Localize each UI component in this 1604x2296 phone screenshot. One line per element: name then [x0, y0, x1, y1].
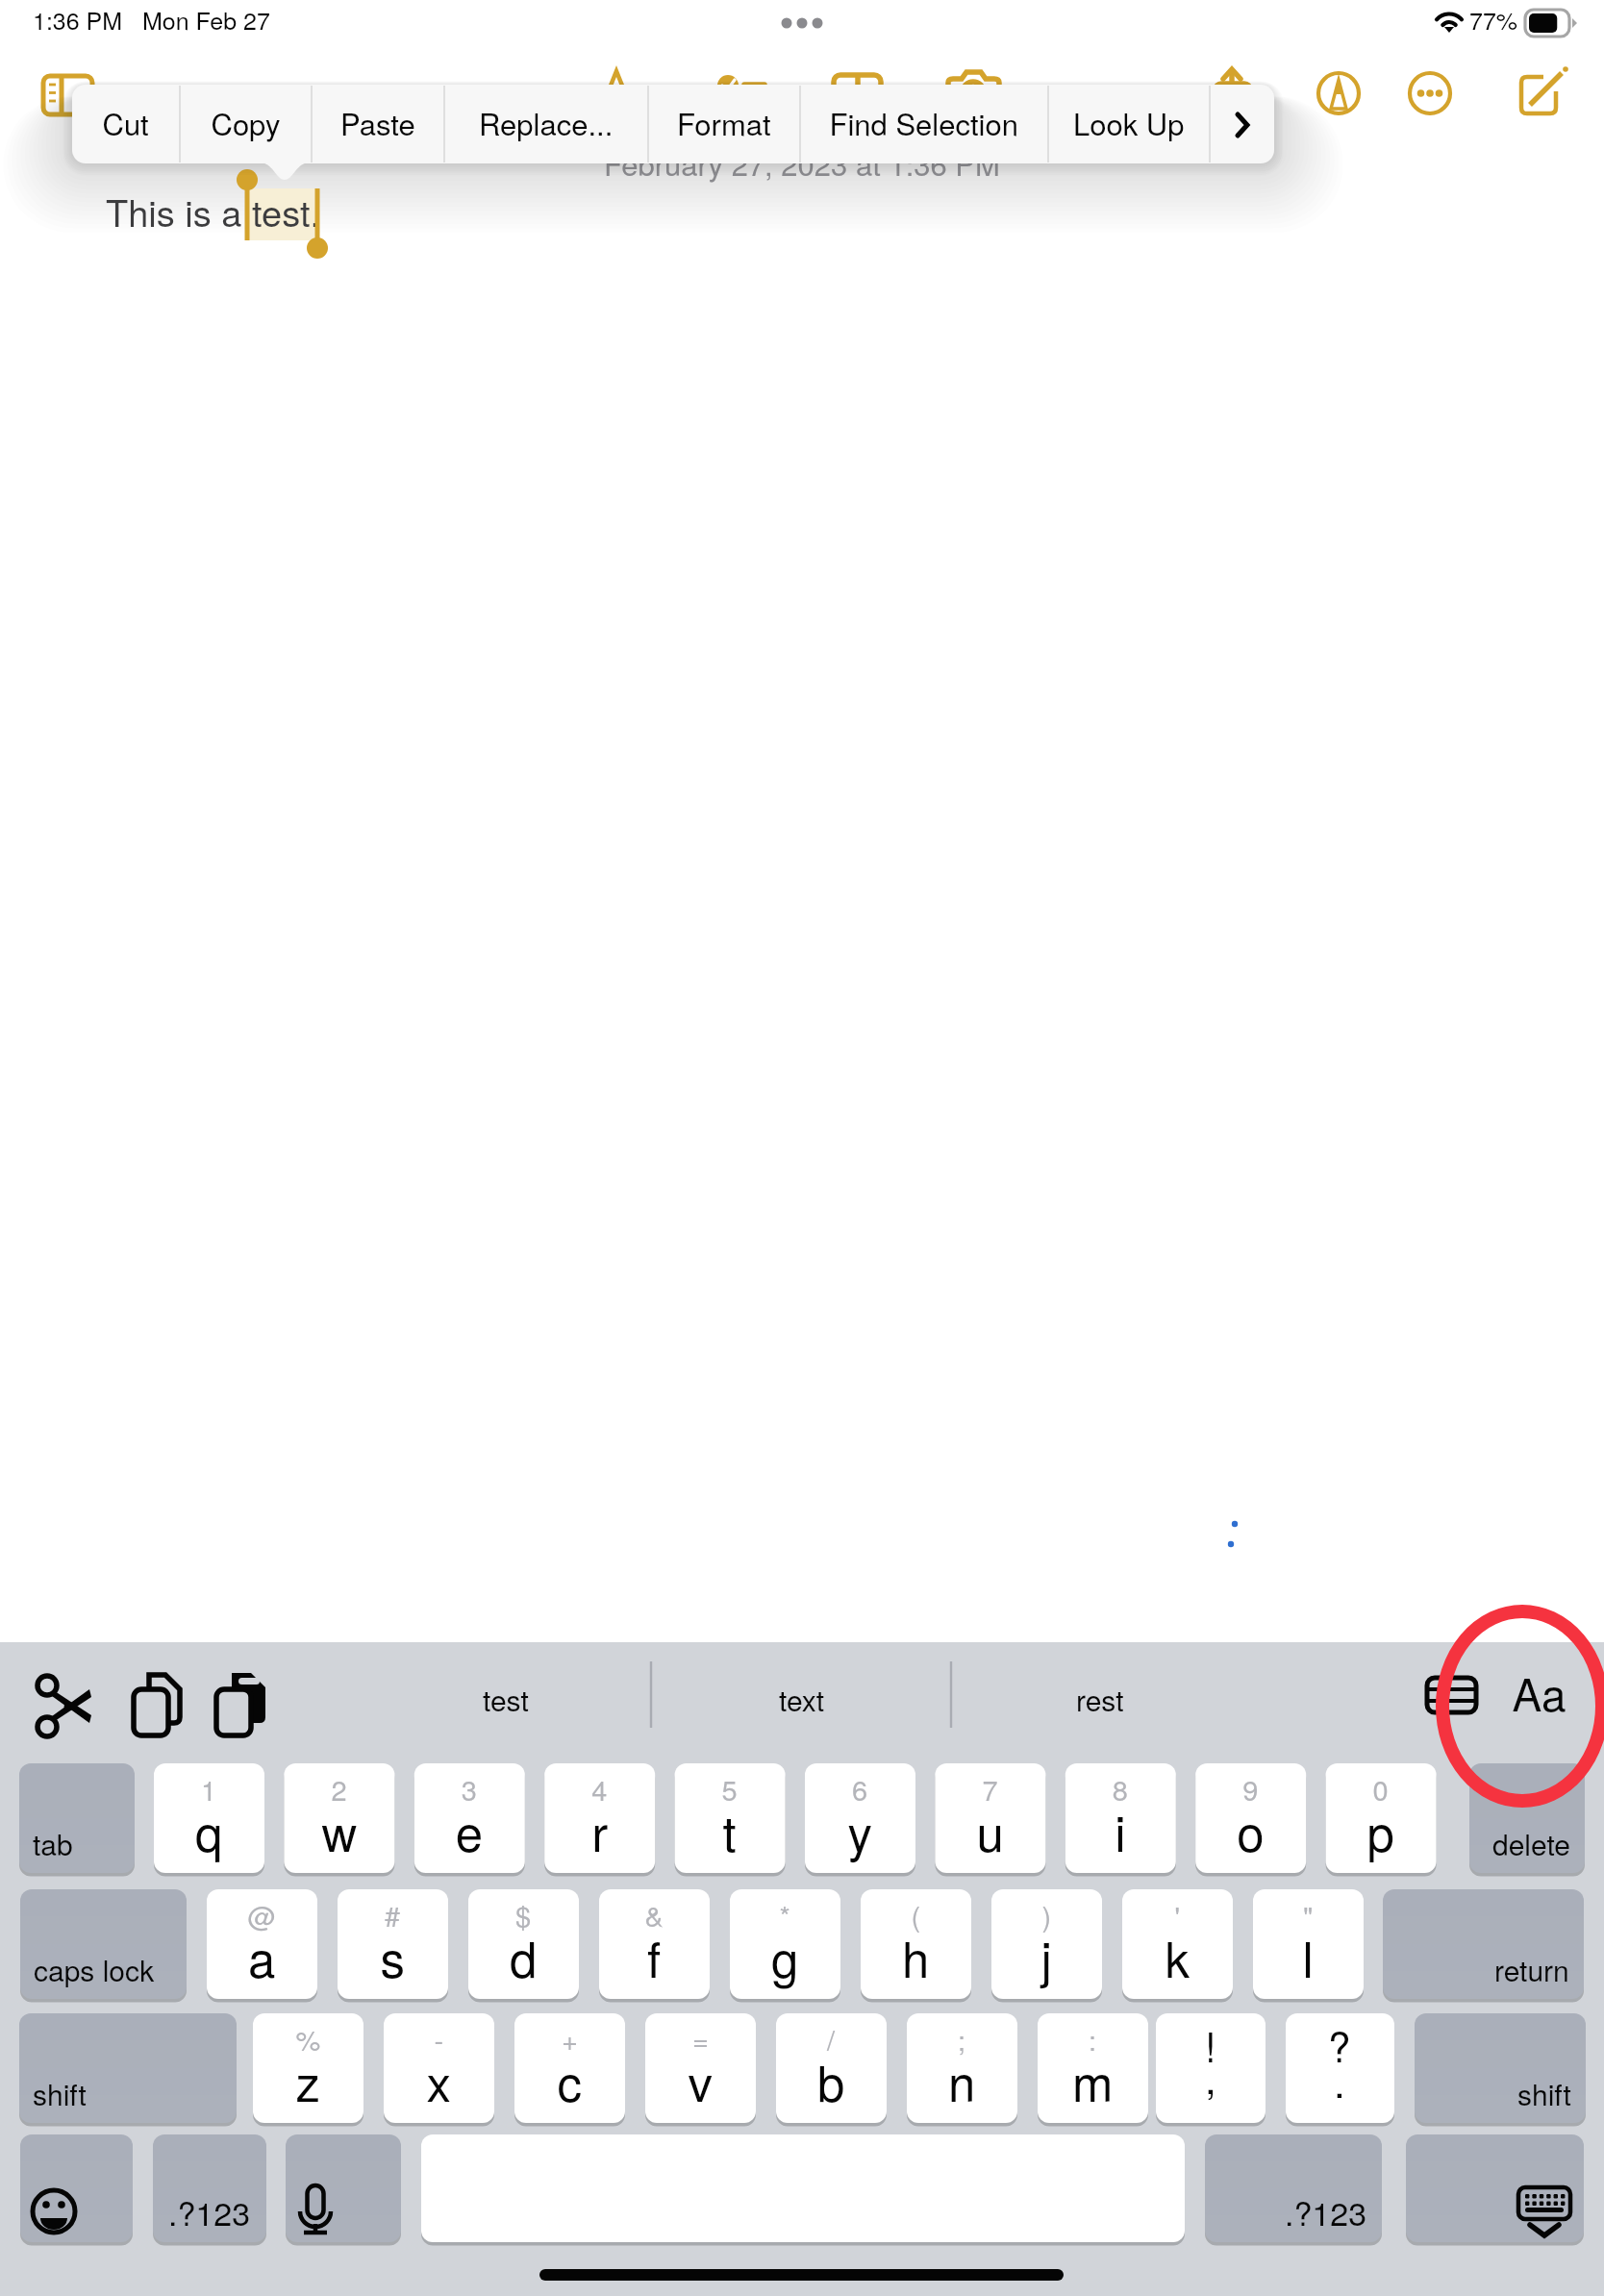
button[interactable]: k [1122, 1889, 1233, 1999]
button[interactable]: Dictation [286, 2134, 401, 2242]
button[interactable]: Cut [19, 1661, 87, 1744]
button[interactable]: caps lock [20, 1889, 187, 1999]
button[interactable]: l [1253, 1889, 1364, 1999]
button[interactable]: Paste [192, 1661, 267, 1744]
button[interactable]: More options [1404, 67, 1457, 120]
button[interactable]: Emoji [20, 2134, 133, 2242]
button[interactable]: New note [1515, 69, 1565, 119]
button[interactable]: shift [1415, 2013, 1586, 2123]
button[interactable]: e [414, 1763, 525, 1873]
button[interactable]: Cut [72, 85, 180, 163]
button[interactable]: Look Up [1048, 85, 1210, 163]
button[interactable]: delete [1469, 1763, 1585, 1873]
button[interactable]: Sidebar [38, 69, 98, 123]
button[interactable]: More menu items [1210, 85, 1274, 163]
button[interactable]: w [284, 1763, 394, 1873]
button[interactable]: g [730, 1889, 840, 1999]
button[interactable]: i [1065, 1763, 1176, 1873]
button[interactable]: u [935, 1763, 1045, 1873]
button[interactable]: r [544, 1763, 655, 1873]
button[interactable]: z [253, 2013, 363, 2123]
button[interactable]: t [675, 1763, 786, 1873]
button[interactable]: Text formatting [1505, 1661, 1582, 1744]
button[interactable]: Copy [180, 85, 312, 163]
button[interactable]: s [338, 1889, 448, 1999]
button[interactable]: Format [648, 85, 800, 163]
button[interactable]: exclamation mark comma [1156, 2013, 1266, 2123]
button[interactable]: Copy [106, 1661, 181, 1744]
button[interactable]: .?123 [153, 2134, 266, 2242]
button[interactable]: d [468, 1889, 579, 1999]
button[interactable]: Paste [312, 85, 444, 163]
button[interactable]: shift [19, 2013, 237, 2123]
button[interactable]: tab [19, 1763, 135, 1873]
button[interactable]: Replace... [444, 85, 648, 163]
button[interactable]: q [154, 1763, 264, 1873]
button[interactable]: y [805, 1763, 915, 1873]
button[interactable]: b [776, 2013, 887, 2123]
button[interactable]: n [907, 2013, 1017, 2123]
button[interactable]: a [207, 1889, 317, 1999]
button[interactable]: o [1195, 1763, 1306, 1873]
button[interactable]: v [645, 2013, 756, 2123]
button[interactable]: c [514, 2013, 625, 2123]
button[interactable]: m [1038, 2013, 1148, 2123]
button[interactable]: return [1383, 1889, 1584, 1999]
button[interactable]: h [861, 1889, 971, 1999]
button[interactable]: x [384, 2013, 494, 2123]
button[interactable]: question mark period [1286, 2013, 1394, 2123]
button[interactable]: space [421, 2134, 1185, 2242]
button[interactable]: Markup [1313, 67, 1366, 120]
button[interactable]: Insert table [1414, 1661, 1491, 1744]
button[interactable]: j [991, 1889, 1102, 1999]
button[interactable]: .?123 [1205, 2134, 1382, 2242]
button[interactable]: rest [971, 1661, 1221, 1744]
button[interactable]: f [599, 1889, 710, 1999]
button[interactable]: text [673, 1661, 923, 1744]
button[interactable]: test [385, 1661, 635, 1744]
button[interactable]: Find Selection [800, 85, 1048, 163]
button[interactable]: Hide keyboard [1406, 2134, 1584, 2242]
button[interactable]: p [1326, 1763, 1437, 1873]
